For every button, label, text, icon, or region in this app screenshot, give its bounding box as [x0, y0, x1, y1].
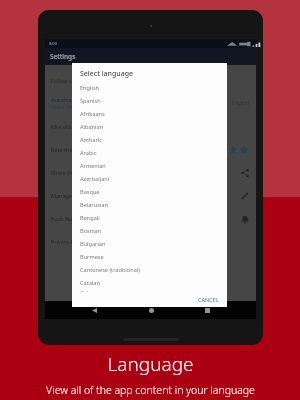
button[interactable]: Rate this app — [228, 145, 250, 155]
staticText: Push Noti — [51, 215, 77, 222]
button[interactable]: Manage s — [45, 184, 256, 207]
staticText: Belarusian — [80, 201, 108, 209]
button[interactable]: Bosnian — [72, 224, 227, 237]
staticText: Albanian — [80, 123, 104, 131]
staticText: Privacy P — [51, 238, 75, 245]
button[interactable]: Spanish — [72, 94, 227, 107]
button[interactable]: CANCEL — [190, 293, 227, 306]
staticText: Language — [107, 351, 194, 377]
button[interactable]: Amharic — [72, 133, 227, 146]
staticText: Azerbaijani — [80, 175, 110, 183]
button[interactable]: Cebuano — [72, 289, 227, 292]
staticText: View all of the app content in your lang… — [46, 383, 255, 397]
button[interactable]: Armenian — [72, 159, 227, 172]
staticText: Bengali — [80, 214, 100, 222]
staticText: Cantonese (traditional) — [80, 266, 140, 274]
button[interactable]: Burmese — [72, 250, 227, 263]
staticText: Bosnian — [80, 227, 102, 235]
staticText: Amharic — [80, 136, 102, 144]
button[interactable]: Azerbaijani — [72, 172, 227, 185]
staticText: CANCEL — [198, 296, 219, 303]
button[interactable]: Miscellane — [45, 115, 256, 138]
button[interactable]: Follow se — [45, 69, 256, 92]
button[interactable]: Share — [240, 168, 250, 178]
staticText: Automati — [51, 96, 75, 103]
button[interactable]: Catalan — [72, 276, 227, 289]
staticText: Manage s — [51, 192, 77, 199]
button[interactable]: Albanian — [72, 120, 227, 133]
staticText: Miscellane — [51, 123, 79, 130]
staticText: Rate this — [51, 146, 74, 153]
staticText: Share this — [51, 169, 77, 176]
staticText: Bulgarian — [80, 240, 106, 248]
button[interactable]: Afrikaans — [72, 107, 227, 120]
button[interactable]: Share this — [45, 161, 256, 184]
staticText: 8:00 — [49, 41, 57, 46]
staticText: Select lan — [51, 104, 74, 111]
button[interactable]: Back — [87, 303, 101, 317]
staticText: Spanish — [80, 97, 101, 105]
button[interactable]: Home — [144, 303, 158, 317]
staticText: Select language — [80, 69, 134, 79]
button[interactable]: Arabic — [72, 146, 227, 159]
button[interactable]: Notifications — [240, 214, 250, 224]
staticText: Follow se — [51, 77, 75, 84]
button[interactable]: Bulgarian — [72, 237, 227, 250]
staticText: Arabic — [80, 149, 97, 157]
staticText: Armenian — [80, 162, 106, 170]
staticText: English — [232, 100, 250, 107]
staticText: Basque — [80, 188, 100, 196]
button[interactable]: Basque — [72, 185, 227, 198]
button[interactable]: Rate this — [45, 138, 256, 161]
button[interactable]: Privacy P — [45, 230, 256, 253]
button[interactable]: Recents — [200, 303, 214, 317]
staticText: Burmese — [80, 253, 104, 261]
button[interactable]: Belarusian — [72, 198, 227, 211]
button[interactable]: Cantonese (traditional) — [72, 263, 227, 276]
staticText: Settings — [50, 52, 76, 61]
staticText: Catalan — [80, 279, 100, 287]
button[interactable]: Edit — [240, 191, 250, 201]
button[interactable]: English — [72, 81, 227, 94]
staticText: English — [80, 84, 100, 92]
button[interactable]: Push Noti — [45, 207, 256, 230]
staticText: Cebuano — [80, 289, 104, 292]
staticText: Afrikaans — [80, 110, 105, 118]
button[interactable]: Automati — [45, 92, 256, 115]
button[interactable]: Bengali — [72, 211, 227, 224]
